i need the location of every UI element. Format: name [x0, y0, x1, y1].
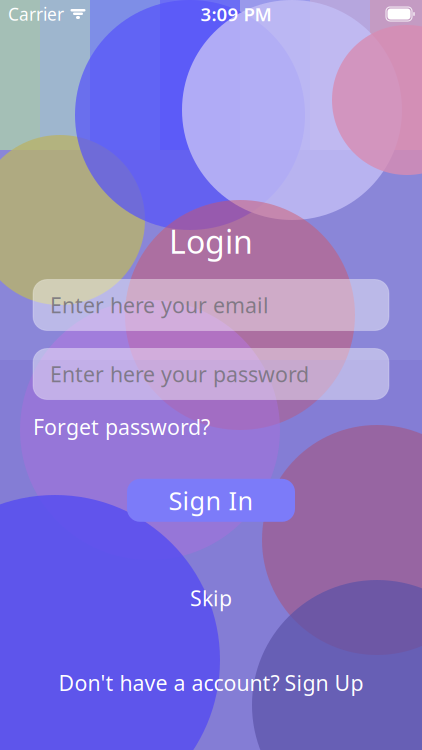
button[interactable]: Don't have a account? — [48, 663, 373, 703]
button[interactable]: Sign In — [127, 479, 295, 522]
staticText: Don't have a account? — [58, 669, 279, 697]
staticText: Sign Up — [284, 669, 363, 697]
staticText: Enter here your email — [50, 291, 269, 319]
staticText: Forget password? — [33, 412, 210, 441]
staticText: Carrier — [8, 2, 64, 25]
button[interactable]: Skip — [172, 578, 250, 618]
button[interactable]: Enter here your email — [33, 279, 389, 330]
button[interactable]: Forget password? — [33, 412, 210, 441]
staticText: Skip — [190, 584, 232, 612]
staticText: Login — [169, 220, 253, 262]
staticText: Sign In — [168, 483, 253, 517]
staticText: 3:09 PM — [200, 2, 271, 26]
staticText: Enter here your password — [50, 360, 309, 388]
button[interactable]: Enter here your password — [33, 348, 389, 399]
